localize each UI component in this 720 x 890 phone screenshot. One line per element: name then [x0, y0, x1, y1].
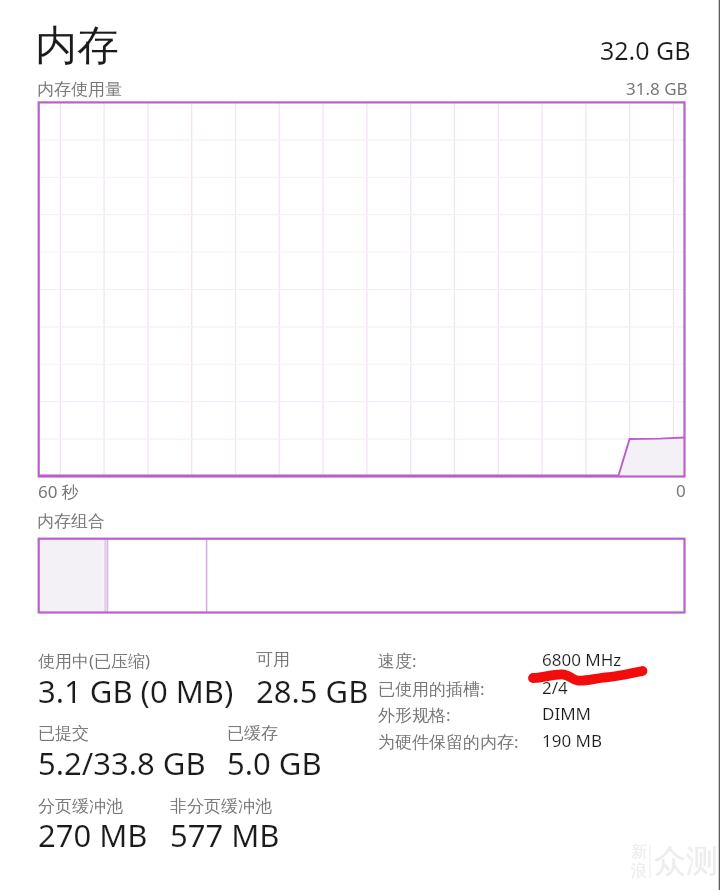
button[interactable]: 内存使用量图表 — [39, 102, 685, 476]
button[interactable]: 内存组合 — [39, 539, 685, 613]
staticText: 非分页缓冲池 — [170, 796, 272, 817]
staticText: 使用中(已压缩) — [38, 649, 151, 672]
staticText: 5.2/33.8 GB — [38, 742, 206, 784]
staticText: 可用 — [256, 649, 290, 670]
staticText: 32.0 GB — [600, 33, 691, 67]
staticText: 60 秒 — [38, 480, 79, 503]
staticText: 内存组合 — [37, 511, 105, 532]
staticText: 31.8 GB — [626, 77, 688, 100]
staticText: 28.5 GB — [256, 670, 369, 712]
staticText: 0 — [676, 479, 686, 502]
staticText: 浪 — [631, 861, 647, 881]
staticText: 已提交 — [38, 723, 89, 744]
staticText: 已使用的插槽: — [378, 677, 485, 700]
staticText: 已缓存 — [227, 723, 278, 744]
staticText: 270 MB — [38, 814, 148, 856]
staticText: 6800 MHz — [542, 648, 622, 671]
staticText: 速度: — [378, 649, 417, 672]
staticText: 内存 — [35, 20, 119, 73]
staticText: 3.1 GB (0 MB) — [38, 670, 234, 712]
staticText: 分页缓冲池 — [38, 796, 123, 817]
staticText: 2/4 — [542, 676, 568, 699]
staticText: 为硬件保留的内存: — [378, 730, 519, 753]
staticText: 新 — [631, 842, 647, 862]
staticText: 190 MB — [542, 729, 603, 752]
staticText: 外形规格: — [378, 703, 451, 726]
staticText: 577 MB — [170, 814, 280, 856]
staticText: DIMM — [542, 702, 592, 725]
staticText: 5.0 GB — [227, 742, 322, 784]
staticText: 内存使用量 — [37, 79, 122, 100]
staticText: 众测 — [654, 841, 718, 881]
